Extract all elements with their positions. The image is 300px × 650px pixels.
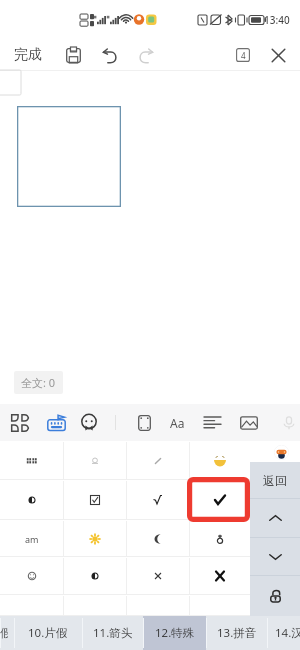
button[interactable]: symbol bbox=[126, 520, 189, 557]
staticText: am bbox=[25, 533, 39, 545]
button[interactable]: symbol bbox=[0, 557, 63, 595]
button[interactable]: Aa bbox=[164, 410, 190, 435]
button[interactable] bbox=[250, 576, 300, 616]
button[interactable] bbox=[250, 538, 300, 575]
button[interactable]: Pages bbox=[227, 40, 258, 70]
staticText: 14.汉 bbox=[275, 625, 300, 641]
staticText: 全文: 0 bbox=[21, 375, 56, 390]
button[interactable]: symbol bbox=[63, 557, 126, 595]
button[interactable]: 10.片假 bbox=[14, 616, 82, 650]
button[interactable]: 返回 bbox=[250, 462, 300, 498]
staticText: 返回 bbox=[263, 473, 287, 488]
button[interactable]: 完成 bbox=[4, 40, 52, 70]
button[interactable]: symbol bbox=[189, 595, 250, 616]
button[interactable]: Align bbox=[199, 409, 225, 436]
button[interactable]: symbol bbox=[126, 557, 189, 595]
button[interactable]: symbol bbox=[189, 557, 250, 595]
staticText: 4 bbox=[241, 50, 246, 61]
button[interactable]: 11.箭头 bbox=[82, 616, 143, 650]
button[interactable]: Redo bbox=[130, 40, 162, 70]
button[interactable]: Emoji bbox=[76, 409, 102, 436]
button[interactable]: Image bbox=[236, 409, 262, 436]
button[interactable]: Crop bbox=[131, 410, 157, 435]
staticText: 11.箭头 bbox=[93, 625, 133, 641]
staticText: 13:40 bbox=[264, 13, 290, 27]
staticText: 13.拼音 bbox=[217, 625, 257, 641]
button[interactable]: 假 bbox=[0, 616, 14, 650]
button[interactable]: Grid bbox=[7, 409, 33, 436]
button[interactable]: symbol bbox=[189, 520, 250, 557]
button[interactable]: symbol bbox=[0, 595, 63, 616]
button[interactable]: Undo bbox=[93, 40, 125, 70]
button[interactable]: symbol bbox=[189, 441, 250, 480]
button[interactable]: symbol bbox=[63, 441, 126, 480]
button[interactable]: symbol bbox=[63, 480, 126, 520]
button[interactable]: symbol bbox=[63, 595, 126, 616]
button[interactable]: 12.特殊 bbox=[143, 616, 206, 650]
button[interactable]: symbol bbox=[126, 595, 189, 616]
staticText: 完成 bbox=[14, 46, 42, 64]
button[interactable]: symbol bbox=[189, 480, 250, 520]
button[interactable]: Keyboard bbox=[43, 409, 69, 436]
button[interactable]: 13.拼音 bbox=[206, 616, 267, 650]
button[interactable]: Sticker bbox=[274, 445, 289, 460]
button[interactable] bbox=[250, 499, 300, 537]
button[interactable]: Close bbox=[262, 40, 294, 70]
button[interactable]: symbol bbox=[0, 441, 63, 480]
button[interactable]: symbol bbox=[0, 520, 63, 557]
button[interactable]: symbol bbox=[63, 520, 126, 557]
button[interactable]: 全文: 0 bbox=[14, 371, 63, 394]
button[interactable]: Voice bbox=[276, 409, 300, 436]
button[interactable]: symbol bbox=[0, 480, 63, 520]
button[interactable]: symbol bbox=[126, 480, 189, 520]
staticText: 10.片假 bbox=[28, 625, 68, 641]
staticText: Aa bbox=[170, 415, 185, 431]
staticText: 假 bbox=[0, 626, 8, 640]
button[interactable]: symbol bbox=[126, 441, 189, 480]
staticText: 12.特殊 bbox=[155, 625, 195, 641]
button[interactable]: Save bbox=[57, 40, 89, 70]
button[interactable]: 14.汉 bbox=[267, 616, 300, 650]
